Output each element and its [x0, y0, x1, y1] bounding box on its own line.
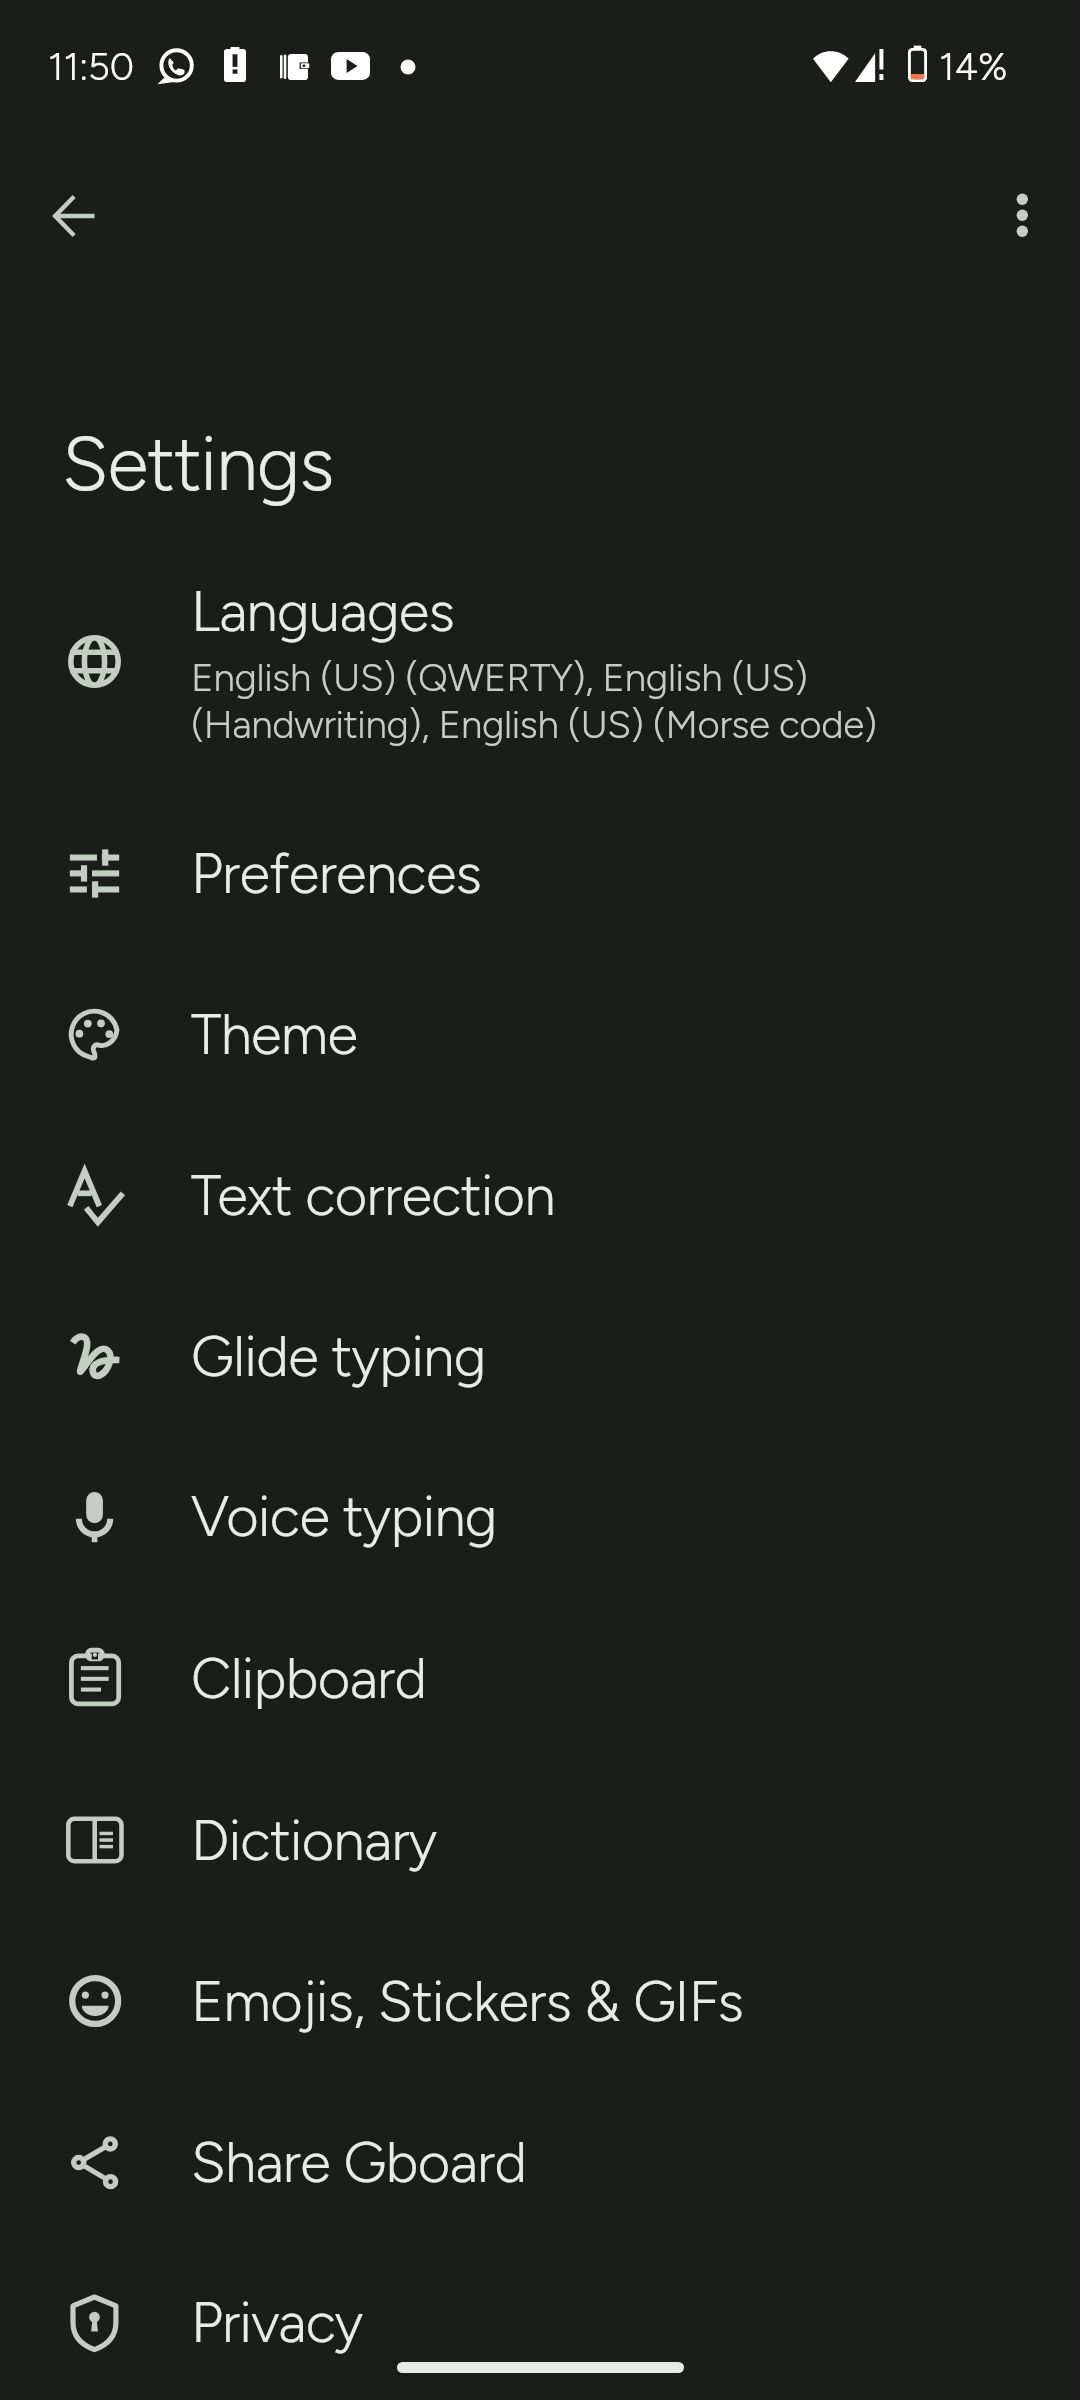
button[interactable]: Dictionary [0, 1761, 1080, 1921]
staticText: 11:50 [48, 44, 135, 90]
button[interactable]: Text correction [0, 1116, 1080, 1276]
button[interactable]: Privacy [0, 2243, 1080, 2400]
staticText: Theme [191, 1001, 358, 1068]
button[interactable]: Voice typing [0, 1437, 1080, 1597]
staticText: Share Gboard [191, 2129, 527, 2196]
button[interactable]: Glide typing [0, 1277, 1080, 1437]
staticText: English (US) (QWERTY), English (US) (Han… [191, 654, 877, 747]
button[interactable]: Share Gboard [0, 2083, 1080, 2243]
staticText: 14% [939, 44, 1008, 90]
staticText: Preferences [191, 840, 482, 907]
button[interactable]: Theme [0, 955, 1080, 1115]
button[interactable]: More options [968, 161, 1076, 269]
button[interactable]: Emojis, Stickers & GIFs [0, 1922, 1080, 2082]
staticText: Privacy [191, 2289, 363, 2356]
staticText: Clipboard [191, 1645, 427, 1712]
staticText: Text correction [191, 1162, 555, 1229]
button[interactable]: Back [19, 161, 127, 269]
staticText: Emojis, Stickers & GIFs [191, 1968, 744, 2035]
staticText: Settings [62, 419, 334, 509]
staticText: Dictionary [191, 1807, 437, 1874]
button[interactable]: Languages [0, 582, 1080, 742]
staticText: Glide typing [191, 1323, 486, 1390]
button[interactable]: Clipboard [0, 1599, 1080, 1759]
staticText: Voice typing [191, 1483, 497, 1550]
staticText: Languages [191, 578, 455, 645]
button[interactable]: Preferences [0, 794, 1080, 954]
